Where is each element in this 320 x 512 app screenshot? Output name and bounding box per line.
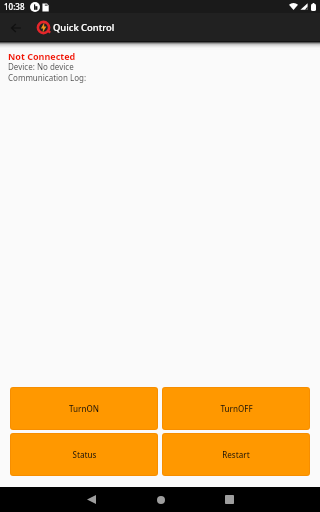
button[interactable]: Status — [10, 433, 158, 476]
button[interactable]: Recents — [215, 487, 244, 512]
staticText: Status — [72, 449, 97, 460]
button[interactable]: TurnON — [10, 387, 158, 430]
staticText: Not Connected — [8, 50, 76, 61]
staticText: Communication Log: — [8, 72, 87, 83]
staticText: TurnON — [69, 403, 99, 414]
staticText: TurnOFF — [220, 403, 253, 414]
staticText: Restart — [222, 449, 250, 460]
staticText: Quick Control — [53, 21, 115, 34]
staticText: Device: No device — [8, 61, 74, 72]
button[interactable]: Back — [77, 487, 106, 512]
button[interactable]: Home — [146, 487, 175, 512]
button[interactable]: Restart — [162, 433, 310, 476]
staticText: 10:38 — [4, 1, 25, 12]
button[interactable]: TurnOFF — [162, 387, 310, 430]
